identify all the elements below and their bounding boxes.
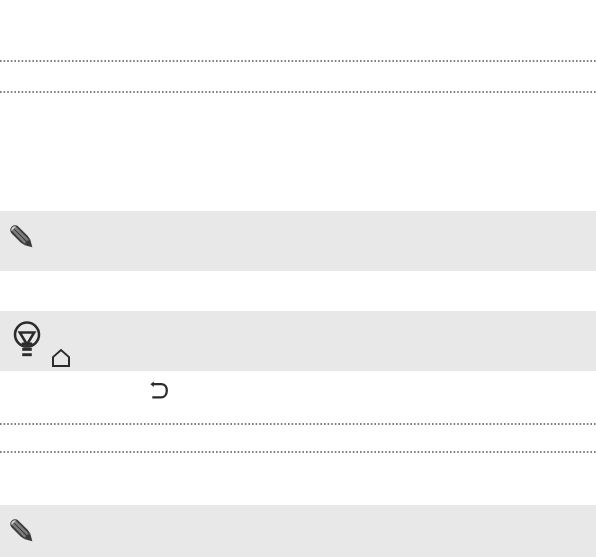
button[interactable]: Home (52, 349, 70, 367)
button[interactable]: Back (150, 381, 169, 400)
button[interactable]: Tip (0, 311, 596, 371)
button[interactable]: Note (0, 505, 596, 557)
button[interactable]: Note (0, 211, 596, 271)
